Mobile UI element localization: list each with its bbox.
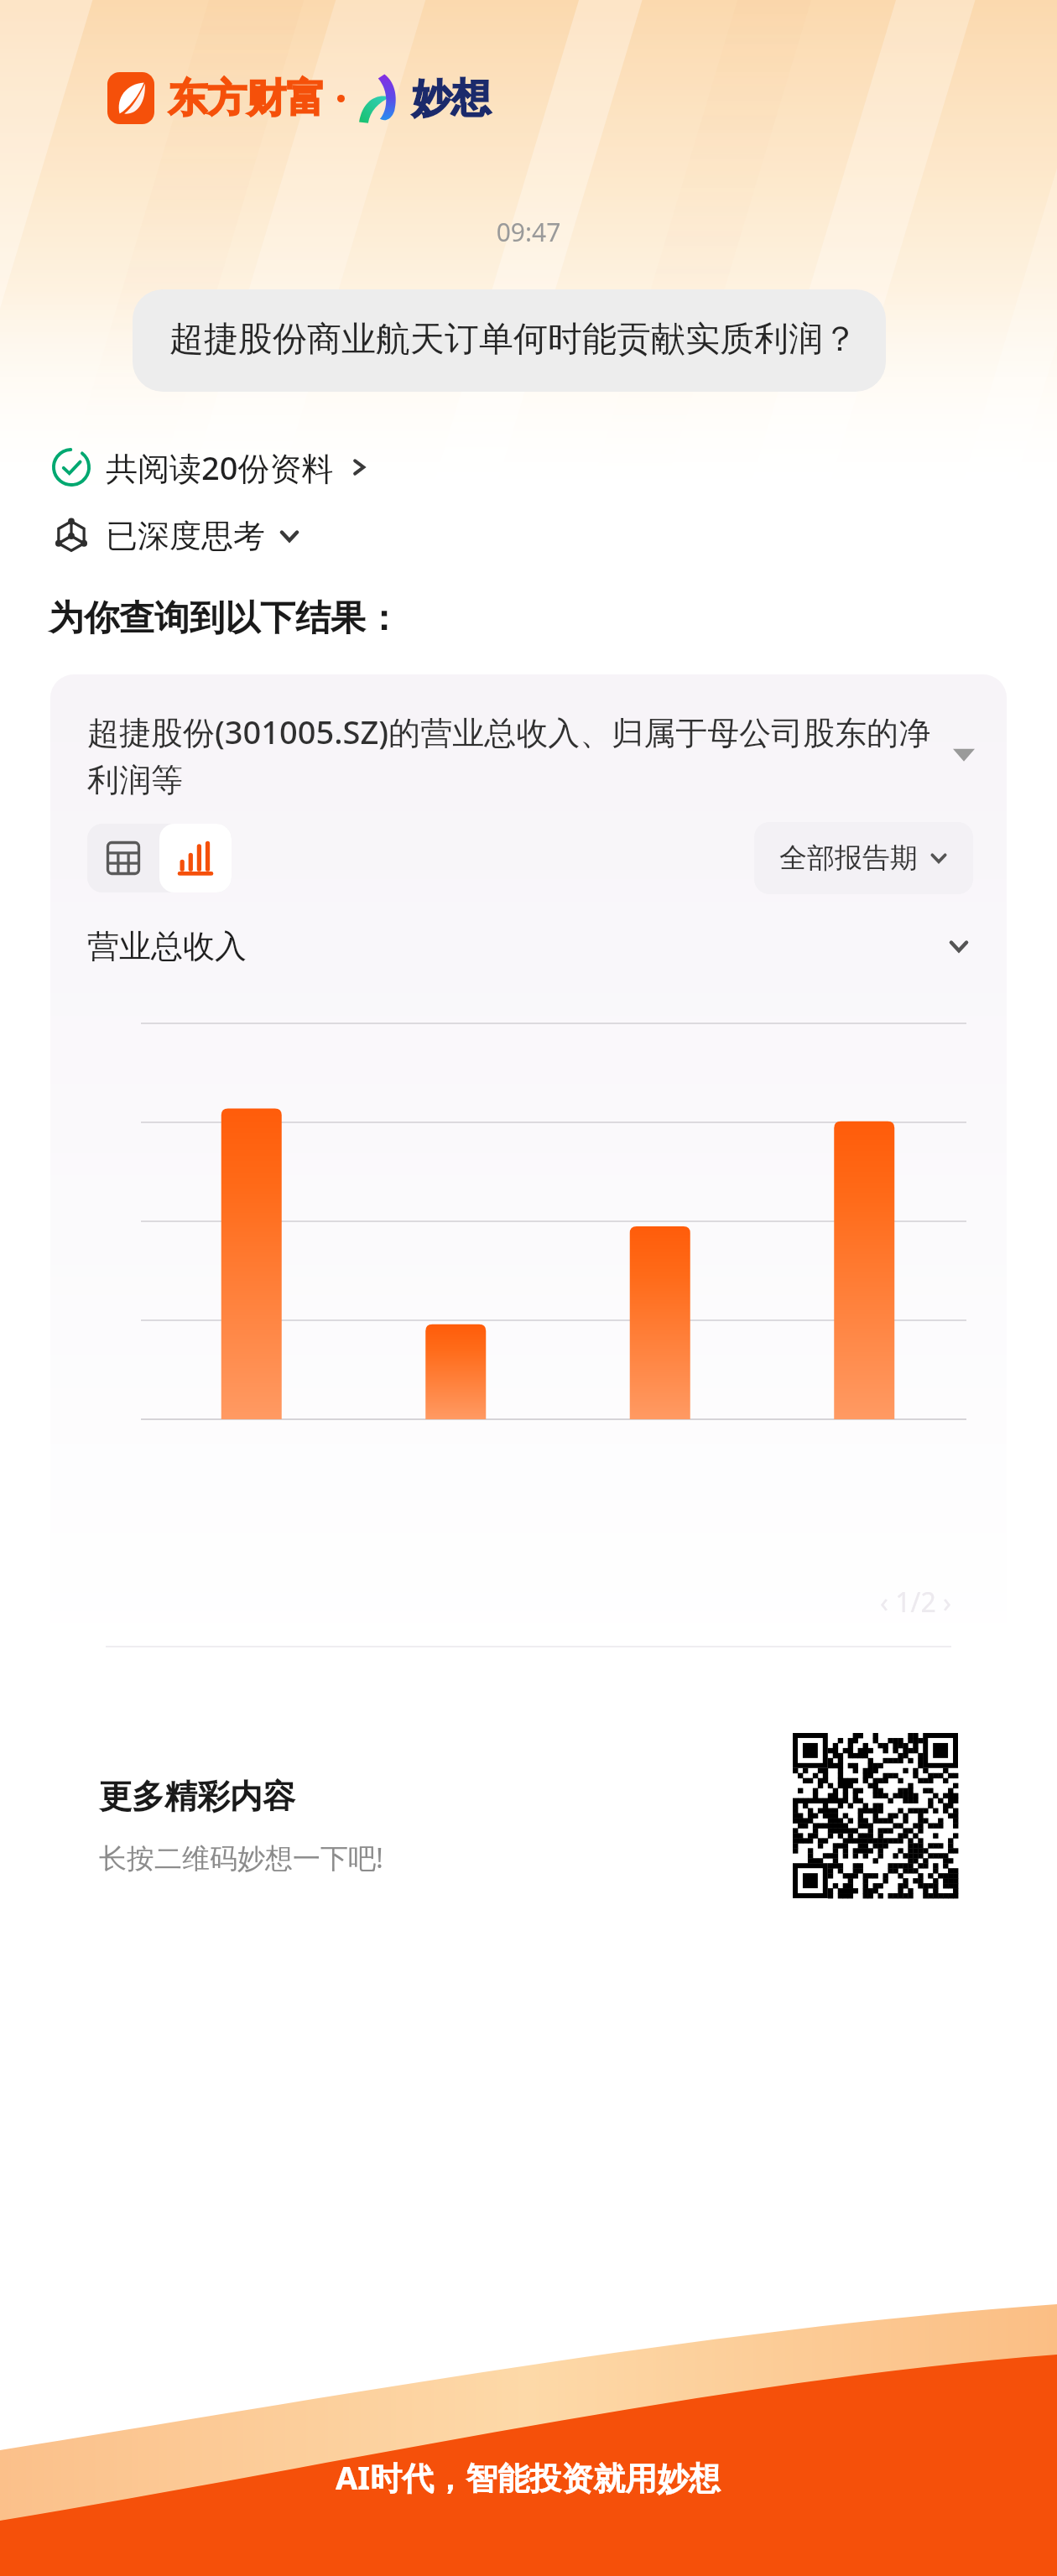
button[interactable]: 二维码 xyxy=(793,1733,958,1919)
button[interactable]: 表格视图 xyxy=(87,824,159,892)
staticText: 妙想 xyxy=(412,74,491,123)
staticText: 已深度思考 xyxy=(106,516,265,556)
staticText: 超捷股份商业航天订单何时能贡献实质利润？ xyxy=(169,318,857,362)
staticText: 东方财富 xyxy=(168,74,325,123)
button[interactable]: 全部报告期 xyxy=(754,822,973,894)
staticText: ‹ 1/2 › xyxy=(880,1584,951,1621)
button[interactable]: 营业总收入 xyxy=(87,926,970,966)
staticText: 营业总收入 xyxy=(87,926,948,966)
staticText: 长按二维码妙想一下吧! xyxy=(99,1839,383,1876)
button[interactable]: 展开 xyxy=(950,741,978,769)
staticText: 超捷股份(301005.SZ)的营业总收入、归属于母公司股东的净利润等 xyxy=(87,710,938,800)
staticText: 为你查询到以下结果： xyxy=(49,596,401,641)
button[interactable]: 已深度思考 xyxy=(52,516,300,556)
button[interactable]: 超捷股份商业航天订单何时能贡献实质利润？ xyxy=(133,289,886,392)
staticText: 更多精彩内容 xyxy=(99,1776,295,1817)
button[interactable]: 图表视图 xyxy=(159,824,232,892)
staticText: 全部报告期 xyxy=(779,840,918,876)
staticText: AI时代，智能投资就用妙想 xyxy=(336,2455,721,2499)
button[interactable]: 共阅读20份资料 xyxy=(52,445,369,489)
staticText: 09:47 xyxy=(0,215,1057,249)
staticText: 共阅读20份资料 xyxy=(106,445,334,489)
